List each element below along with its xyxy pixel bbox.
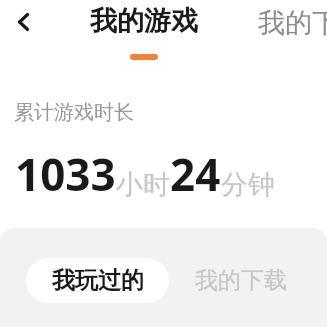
staticText: 我的下载: [258, 6, 327, 40]
button[interactable]: 我的下载: [258, 0, 327, 66]
staticText: 1033: [15, 144, 116, 204]
staticText: 我玩过的: [52, 266, 144, 295]
staticText: 24: [170, 144, 221, 204]
staticText: 我的游戏: [74, 4, 214, 38]
button[interactable]: 我玩过的: [26, 258, 169, 303]
button[interactable]: Back: [2, 0, 46, 44]
staticText: 分钟: [221, 168, 275, 202]
staticText: 累计游戏时长: [14, 100, 134, 125]
button[interactable]: 我的下载: [169, 258, 312, 303]
button[interactable]: 我的游戏: [74, 0, 214, 66]
staticText: 我的下载: [195, 266, 287, 295]
staticText: 小时: [116, 168, 170, 202]
